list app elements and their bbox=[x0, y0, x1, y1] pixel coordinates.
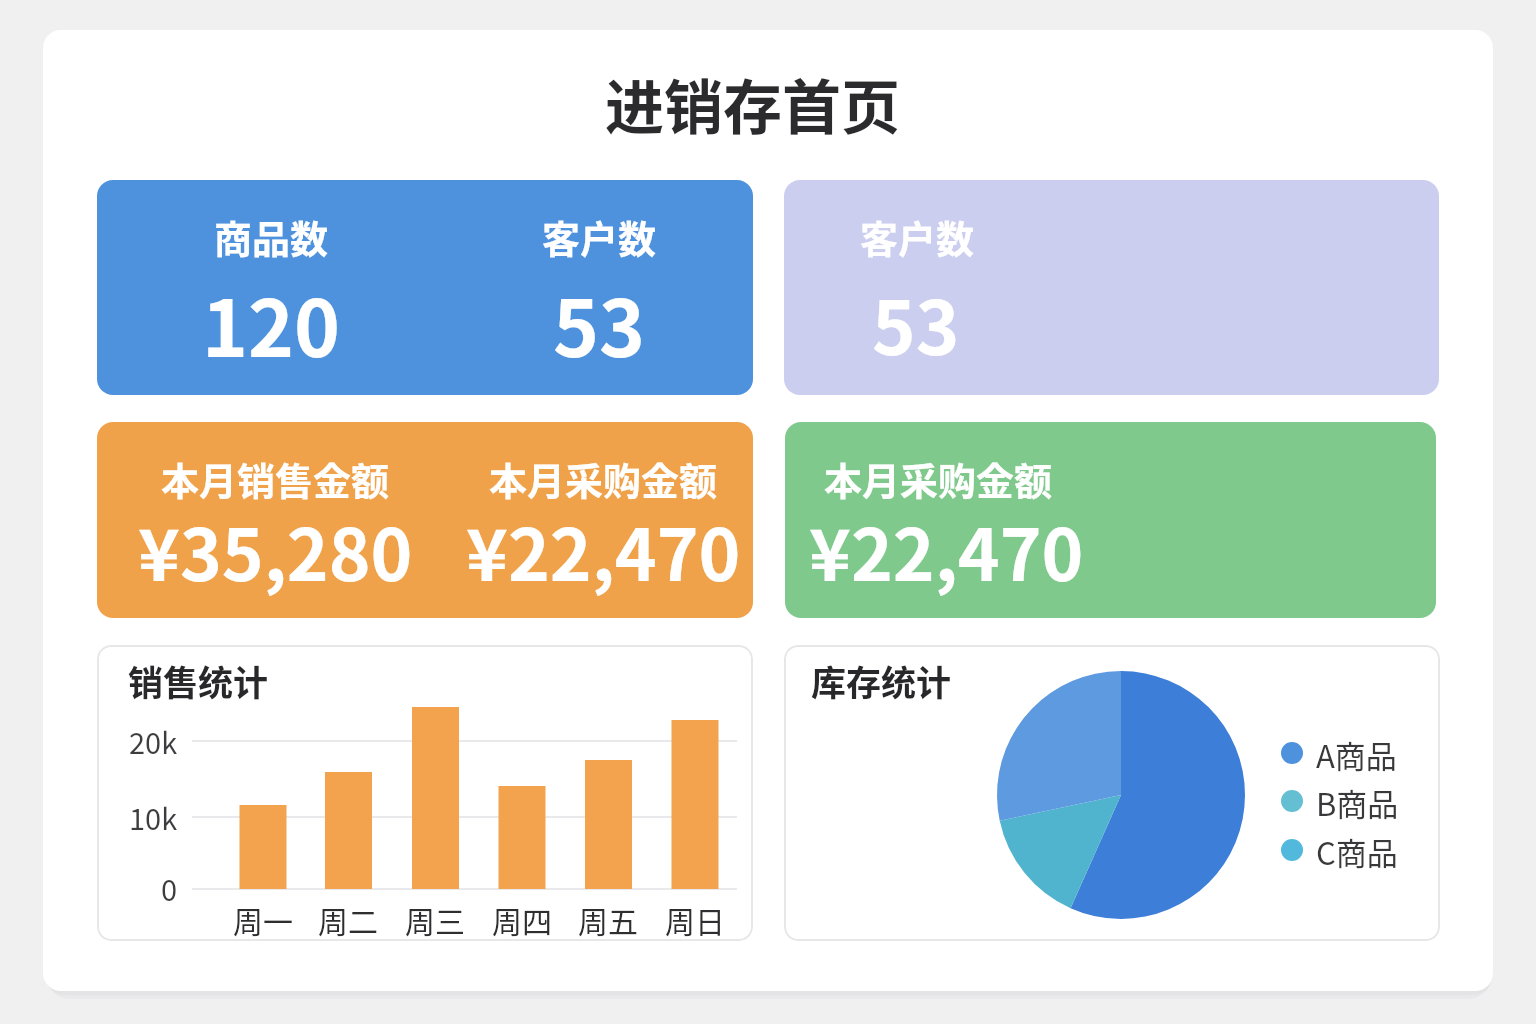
button[interactable]: 销售统计 bbox=[97, 645, 753, 941]
staticText: 库存统计 bbox=[811, 655, 952, 705]
staticText: A商品 bbox=[1316, 732, 1397, 774]
staticText: ¥35,280 bbox=[138, 499, 413, 602]
staticText: 周日 bbox=[665, 898, 725, 940]
button[interactable]: 客户数 bbox=[784, 180, 1439, 395]
staticText: 53 bbox=[553, 267, 646, 380]
staticText: 本月销售金额 bbox=[161, 451, 390, 506]
staticText: 周二 bbox=[318, 898, 378, 940]
button[interactable]: 本月采购金额 bbox=[785, 422, 1436, 618]
staticText: 周五 bbox=[578, 898, 638, 940]
staticText: ¥22,470 bbox=[809, 499, 1084, 602]
staticText: 客户数 bbox=[542, 209, 657, 264]
staticText: ¥22,470 bbox=[466, 499, 741, 602]
button[interactable]: 本月销售金额 bbox=[97, 422, 753, 618]
staticText: 周四 bbox=[492, 898, 552, 940]
staticText: 10k bbox=[129, 796, 178, 838]
staticText: 进销存首页 bbox=[605, 61, 901, 146]
staticText: 客户数 bbox=[860, 209, 975, 264]
staticText: 20k bbox=[129, 720, 178, 762]
staticText: 销售统计 bbox=[128, 655, 269, 705]
staticText: 商品数 bbox=[214, 209, 329, 264]
staticText: C商品 bbox=[1316, 829, 1398, 871]
staticText: 53 bbox=[872, 269, 960, 376]
button[interactable]: 库存统计 bbox=[784, 645, 1440, 941]
staticText: 本月采购金额 bbox=[824, 451, 1053, 506]
staticText: B商品 bbox=[1316, 780, 1399, 822]
button[interactable]: 商品数 bbox=[97, 180, 753, 395]
staticText: 周一 bbox=[233, 898, 293, 940]
staticText: 本月采购金额 bbox=[489, 451, 718, 506]
staticText: 120 bbox=[202, 267, 341, 380]
staticText: 0 bbox=[161, 867, 178, 909]
staticText: 周三 bbox=[405, 898, 465, 940]
